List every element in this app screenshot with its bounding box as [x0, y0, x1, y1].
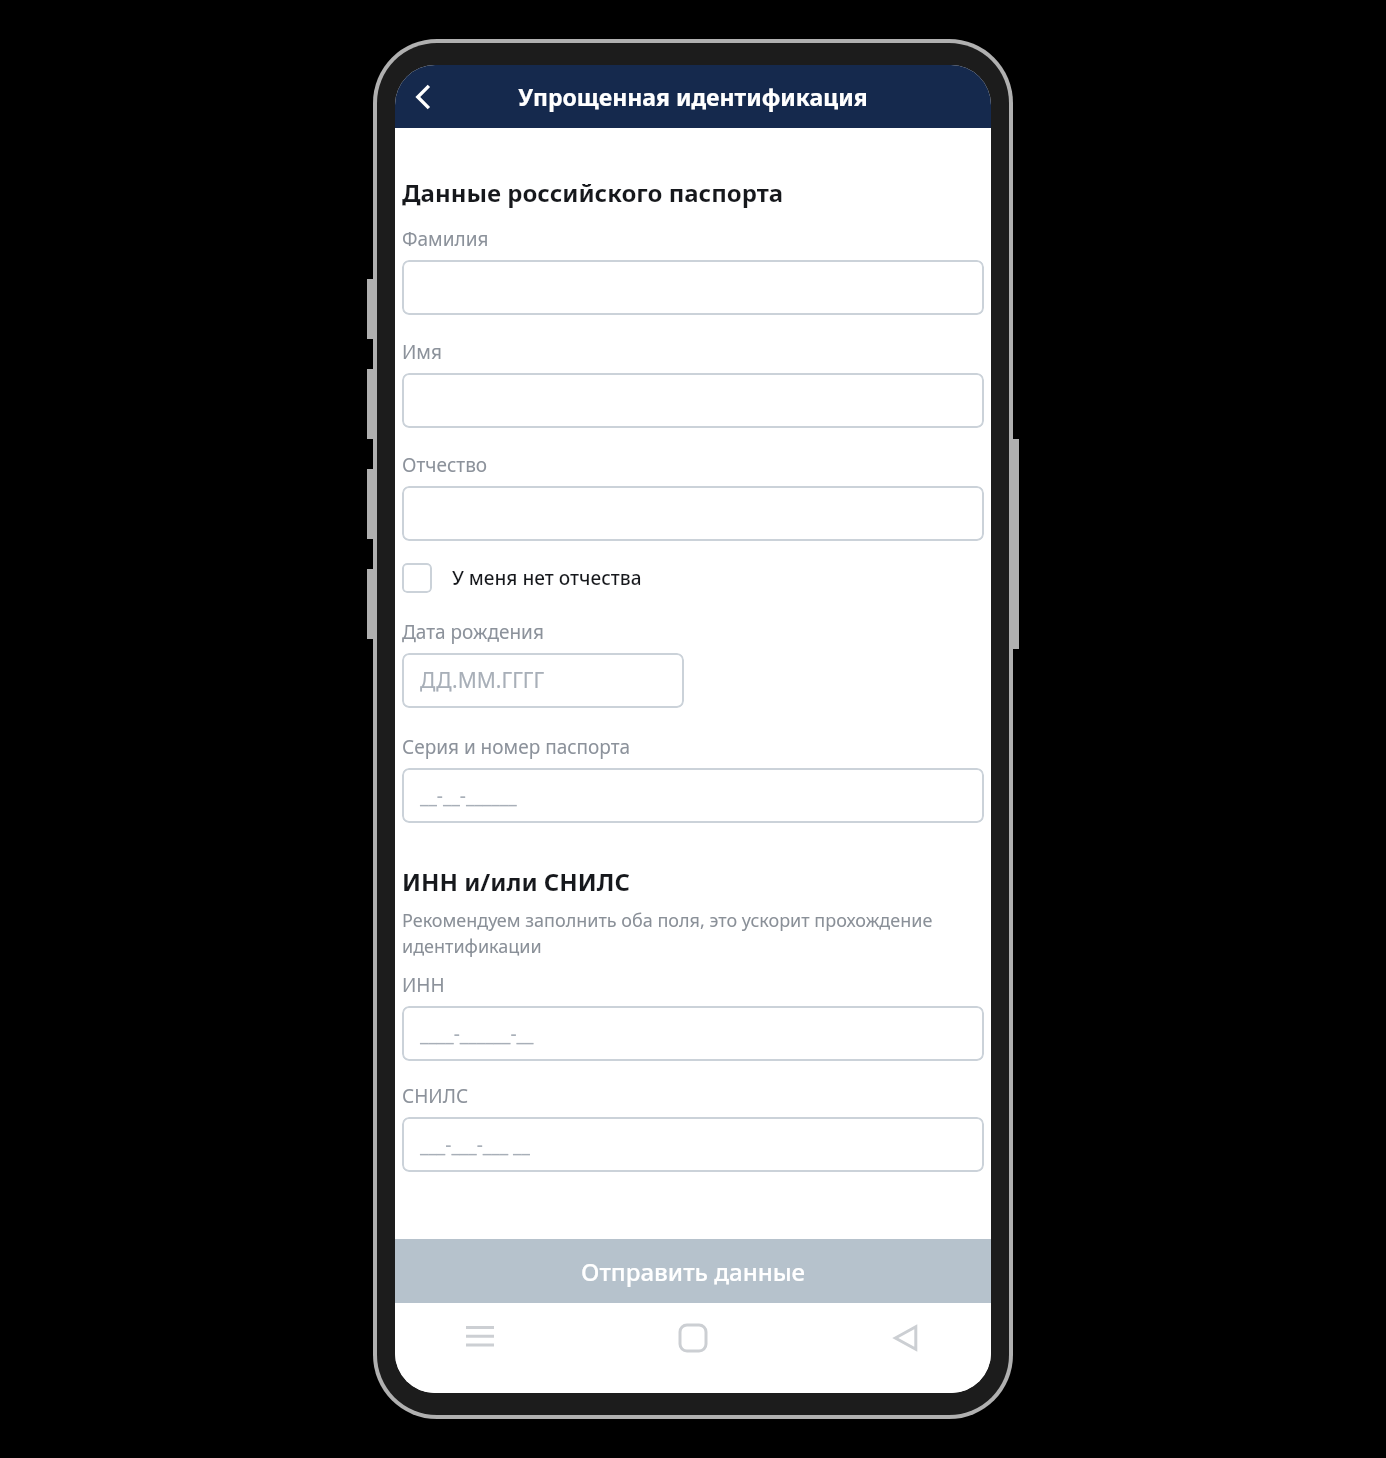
staticText: У меня нет отчества	[452, 565, 642, 591]
staticText: __-__-______	[420, 783, 517, 809]
button[interactable]: Главный экран	[664, 1309, 722, 1367]
button[interactable]: __-__-______	[402, 768, 984, 823]
staticText: ___-___-___ __	[420, 1132, 530, 1158]
staticText: СНИЛС	[402, 1083, 469, 1109]
button[interactable]: Отправить данные	[395, 1239, 991, 1303]
button[interactable]: У меня нет отчества	[402, 563, 984, 593]
staticText: Отправить данные	[581, 1255, 806, 1288]
staticText: ДД.ММ.ГГГГ	[420, 666, 545, 695]
staticText: ИНН	[402, 972, 445, 998]
staticText: Упрощенная идентификация	[518, 81, 868, 112]
staticText: ____-______-__	[420, 1021, 534, 1047]
staticText: Серия и номер паспорта	[402, 734, 631, 760]
button[interactable]: ___-___-___ __	[402, 1117, 984, 1172]
button[interactable]	[402, 486, 984, 541]
button[interactable]: ____-______-__	[402, 1006, 984, 1061]
button[interactable]: Назад	[877, 1309, 935, 1367]
button[interactable]	[402, 373, 984, 428]
button[interactable]: Недавние приложения	[451, 1309, 509, 1367]
staticText: Дата рождения	[402, 619, 544, 645]
staticText: Фамилия	[402, 226, 489, 252]
staticText: Имя	[402, 339, 442, 365]
button[interactable]: Назад	[395, 69, 451, 125]
staticText: Данные российского паспорта	[402, 176, 784, 209]
staticText: Отчество	[402, 452, 488, 478]
staticText: ИНН и/или СНИЛС	[402, 865, 630, 898]
button[interactable]: ДД.ММ.ГГГГ	[402, 653, 684, 708]
staticText: Рекомендуем заполнить оба поля, это уско…	[402, 908, 984, 958]
button[interactable]	[402, 260, 984, 315]
